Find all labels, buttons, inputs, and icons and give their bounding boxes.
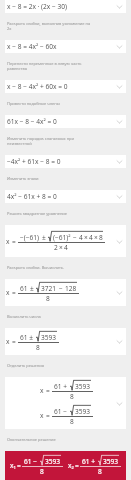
staticText: 8 [40,467,44,476]
staticText: 3593 [103,457,119,466]
staticText: Раскрыть скобки. Вычислить. [7,265,65,270]
staticText: Решить квадратное уравнение [7,211,68,216]
staticText: Раскрыть скобки, выполнив умножение на 2… [7,21,92,31]
staticText: 61 + [82,457,96,466]
staticText: − [59,284,63,293]
staticText: x [6,337,10,346]
staticText: 8 [70,417,74,426]
staticText: 4 [64,243,68,252]
staticText: −(−61) [20,233,40,242]
staticText: = [46,386,50,395]
staticText: 4 [79,233,83,242]
staticText: x₂ [68,461,74,470]
staticText: Вычислить числа [7,314,41,319]
staticText: 3593 [75,407,91,416]
staticText: x [40,386,44,395]
staticText: 8 [36,343,40,352]
staticText: 61 ± [20,333,34,342]
staticText: 2 [54,243,58,252]
staticText: x − 8 − 4x² + 60x = 0 [7,82,68,91]
staticText: 3593 [41,333,57,342]
staticText: 4x² − 61x + 8 = 0 [7,192,57,201]
staticText: Привести подобные члены [7,101,60,106]
staticText: ± [30,284,34,293]
staticText: 3721 [41,284,57,293]
staticText: 61 + [54,382,68,391]
staticText: x − 8 = 4x² − 60x [7,42,57,51]
staticText: x [6,288,10,297]
button[interactable]: x − 8 − 4x² + 60x = 0 [5,80,126,93]
staticText: = [17,461,21,470]
staticText: Перенести переменные в левую часть равен… [7,61,92,71]
staticText: 61 − [54,407,68,416]
staticText: 128 [65,284,77,293]
staticText: × [84,233,88,242]
button[interactable]: x [5,328,126,355]
staticText: 3593 [45,457,61,466]
button[interactable]: x − 8 = 4x² − 60x [5,40,126,53]
button[interactable]: 4x² − 61x + 8 = 0 [5,190,126,203]
staticText: Окончательное решение [7,437,56,442]
button[interactable]: x₁ [5,451,126,480]
staticText: ± [42,233,46,242]
staticText: − [73,233,77,242]
button[interactable]: x [5,377,126,429]
staticText: 8 [98,467,102,476]
staticText: = [12,237,16,246]
staticText: = [12,288,16,297]
staticText: Отделить решения [7,363,44,368]
staticText: × [94,233,98,242]
staticText: × [59,243,63,252]
staticText: −4x² + 61x − 8 = 0 [7,157,61,166]
staticText: 61 [20,284,28,293]
staticText: 4 [89,233,93,242]
staticText: = [46,411,50,420]
staticText: x [6,237,10,246]
staticText: x₁ [10,461,16,470]
staticText: (−61)² [53,233,71,242]
staticText: x − 8 = 2x · (2x − 30) [7,2,68,11]
button[interactable]: x [5,279,126,306]
staticText: = [12,337,16,346]
button[interactable]: x [5,225,126,257]
staticText: 61x − 8 − 4x² = 0 [7,117,57,126]
staticText: Изменить порядок слагаемых при неизвестн… [7,136,92,146]
button[interactable]: −4x² + 61x − 8 = 0 [5,155,126,168]
button[interactable]: x − 8 = 2x · (2x − 30) [5,0,126,13]
button[interactable]: 61x − 8 − 4x² = 0 [5,115,126,128]
staticText: x [40,411,44,420]
staticText: 8 [99,233,103,242]
staticText: 3593 [75,382,91,391]
staticText: 61 − [24,457,38,466]
staticText: = [75,461,79,470]
staticText: 8 [70,392,74,401]
staticText: 8 [46,294,50,303]
staticText: Изменить знаки [7,176,39,181]
